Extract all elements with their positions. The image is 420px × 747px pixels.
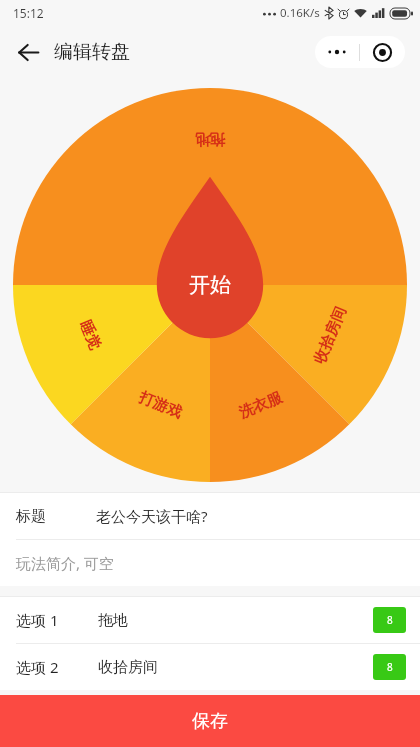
staticText: 8 xyxy=(387,660,393,674)
staticText: 收拾房间 xyxy=(98,658,158,677)
staticText: 打游戏 xyxy=(136,388,185,423)
staticText: 收拾房间 xyxy=(310,304,350,367)
button[interactable]: Close mini program xyxy=(360,36,405,68)
button[interactable]: More options xyxy=(315,36,359,68)
button[interactable]: Spin the wheel, start xyxy=(13,88,407,482)
button[interactable]: 选项 2 xyxy=(0,644,420,690)
staticText: 编辑转盘 xyxy=(54,40,130,64)
staticText: 睡觉 xyxy=(75,318,104,353)
staticText: 选项 1 xyxy=(16,610,59,630)
button[interactable]: Back xyxy=(6,30,50,74)
staticText: 保存 xyxy=(192,710,228,733)
staticText: 洗衣服 xyxy=(236,388,285,423)
staticText: 老公今天该干啥? xyxy=(96,506,208,526)
button[interactable]: 标题 xyxy=(0,493,420,539)
staticText: 15:12 xyxy=(13,5,44,21)
button[interactable]: 玩法简介, 可空 xyxy=(0,540,420,586)
staticText: 拖地 xyxy=(98,611,128,630)
staticText: 拖地 xyxy=(195,130,225,149)
button[interactable]: 选项 1 xyxy=(0,597,420,643)
staticText: 开始 xyxy=(189,272,231,298)
staticText: 玩法简介, 可空 xyxy=(16,553,114,573)
staticText: 标题 xyxy=(16,507,46,526)
staticText: 8 xyxy=(387,613,393,627)
button[interactable]: 保存 xyxy=(0,695,420,747)
button[interactable]: 8 xyxy=(373,654,406,680)
staticText: 选项 2 xyxy=(16,657,59,677)
button[interactable]: 8 xyxy=(373,607,406,633)
staticText: 0.16K/s xyxy=(280,5,320,21)
